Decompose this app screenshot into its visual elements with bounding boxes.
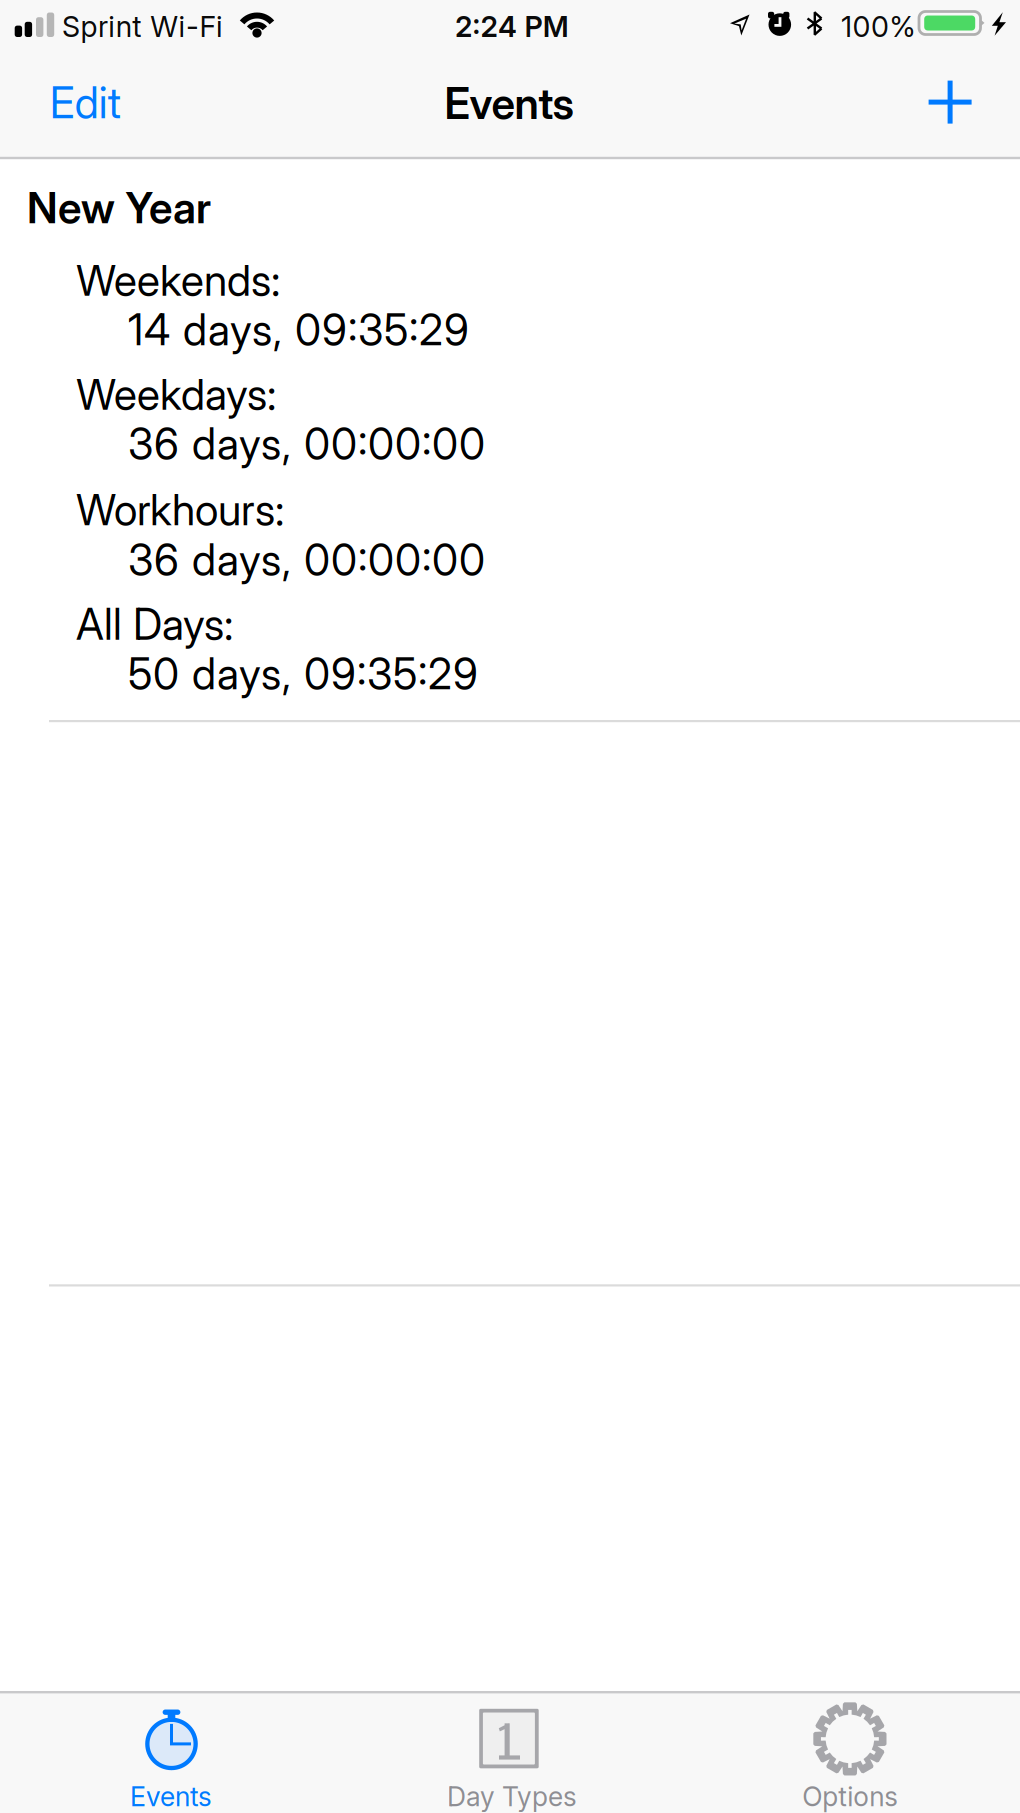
staticText: Day Types <box>447 1780 577 1813</box>
button[interactable]: New Year <box>0 158 1020 720</box>
staticText: Events <box>445 78 574 129</box>
button[interactable]: Day Types <box>340 1691 680 1813</box>
button[interactable]: Edit <box>28 50 146 156</box>
staticText: 100% <box>841 9 915 44</box>
staticText: New Year <box>27 182 211 233</box>
staticText: All Days: <box>76 599 233 650</box>
staticText: Options <box>802 1780 898 1813</box>
staticText: Weekdays: <box>76 369 276 420</box>
staticText: 36 days, 00:00:00 <box>128 418 485 469</box>
button[interactable]: Options <box>680 1691 1020 1813</box>
staticText: Events <box>130 1780 212 1813</box>
staticText: Weekends: <box>76 255 280 306</box>
staticText: 50 days, 09:35:29 <box>128 648 478 699</box>
button[interactable]: Add <box>897 50 1003 156</box>
staticText: Sprint Wi-Fi <box>62 9 223 44</box>
staticText: Edit <box>50 77 121 128</box>
staticText: 14 days, 09:35:29 <box>128 304 469 355</box>
staticText: 2:24 PM <box>455 9 569 44</box>
staticText: 36 days, 00:00:00 <box>128 534 485 585</box>
button[interactable]: Events <box>0 1691 340 1813</box>
staticText: Workhours: <box>76 484 284 535</box>
